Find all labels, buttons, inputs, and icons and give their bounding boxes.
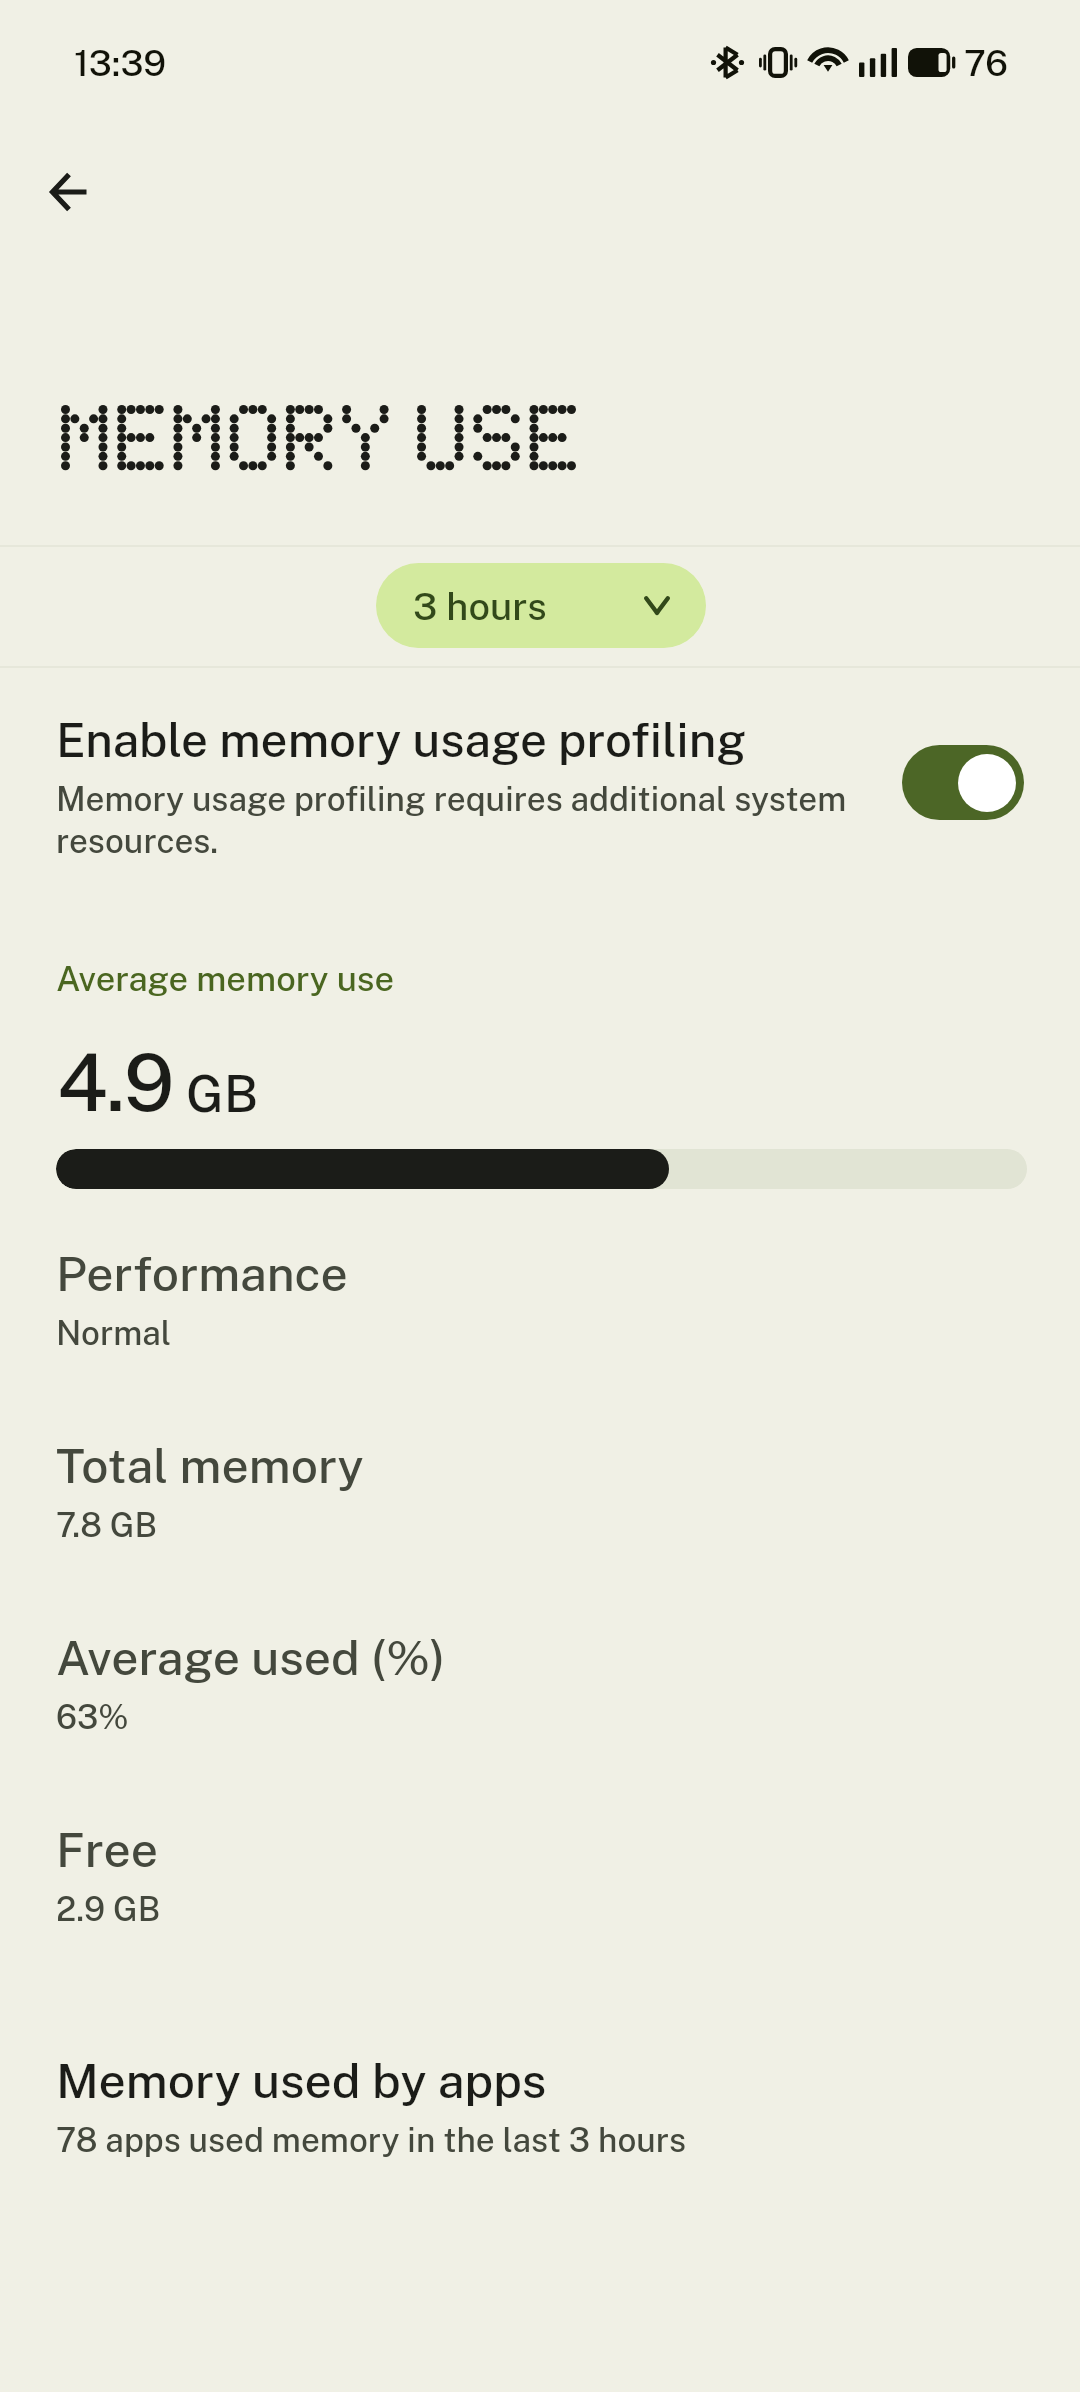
- staticText: 3 hours: [413, 584, 547, 628]
- staticText: Average memory use: [56, 959, 395, 999]
- staticText: Memory used by apps: [56, 2053, 547, 2109]
- button[interactable]: Back: [21, 144, 117, 240]
- button[interactable]: Average used (%): [0, 1630, 1080, 1737]
- staticText: 78 apps used memory in the last 3 hours: [56, 2120, 687, 2160]
- staticText: Memory usage profiling requires addition…: [56, 777, 936, 861]
- staticText: 76: [964, 44, 1009, 84]
- staticText: Performance: [56, 1246, 348, 1302]
- button[interactable]: Enable memory usage profiling: [0, 690, 1080, 870]
- staticText: 13:39: [74, 44, 167, 84]
- staticText: GB: [186, 1067, 259, 1123]
- button[interactable]: Free: [0, 1822, 1080, 1929]
- staticText: 2.9 GB: [56, 1889, 161, 1929]
- staticText: Total memory: [56, 1438, 364, 1494]
- staticText: Enable memory usage profiling: [56, 712, 747, 768]
- staticText: 7.8 GB: [56, 1505, 157, 1545]
- staticText: 4.9: [57, 1041, 173, 1127]
- staticText: Normal: [56, 1313, 172, 1353]
- button[interactable]: Memory used by apps: [0, 2053, 1080, 2160]
- button[interactable]: 3 hours: [376, 563, 706, 648]
- staticText: Free: [56, 1822, 159, 1878]
- button[interactable]: Performance: [0, 1246, 1080, 1353]
- button[interactable]: Total memory: [0, 1438, 1080, 1545]
- button[interactable]: Enable memory usage profiling: [902, 745, 1024, 820]
- staticText: Average used (%): [56, 1630, 446, 1686]
- staticText: 63%: [56, 1697, 129, 1737]
